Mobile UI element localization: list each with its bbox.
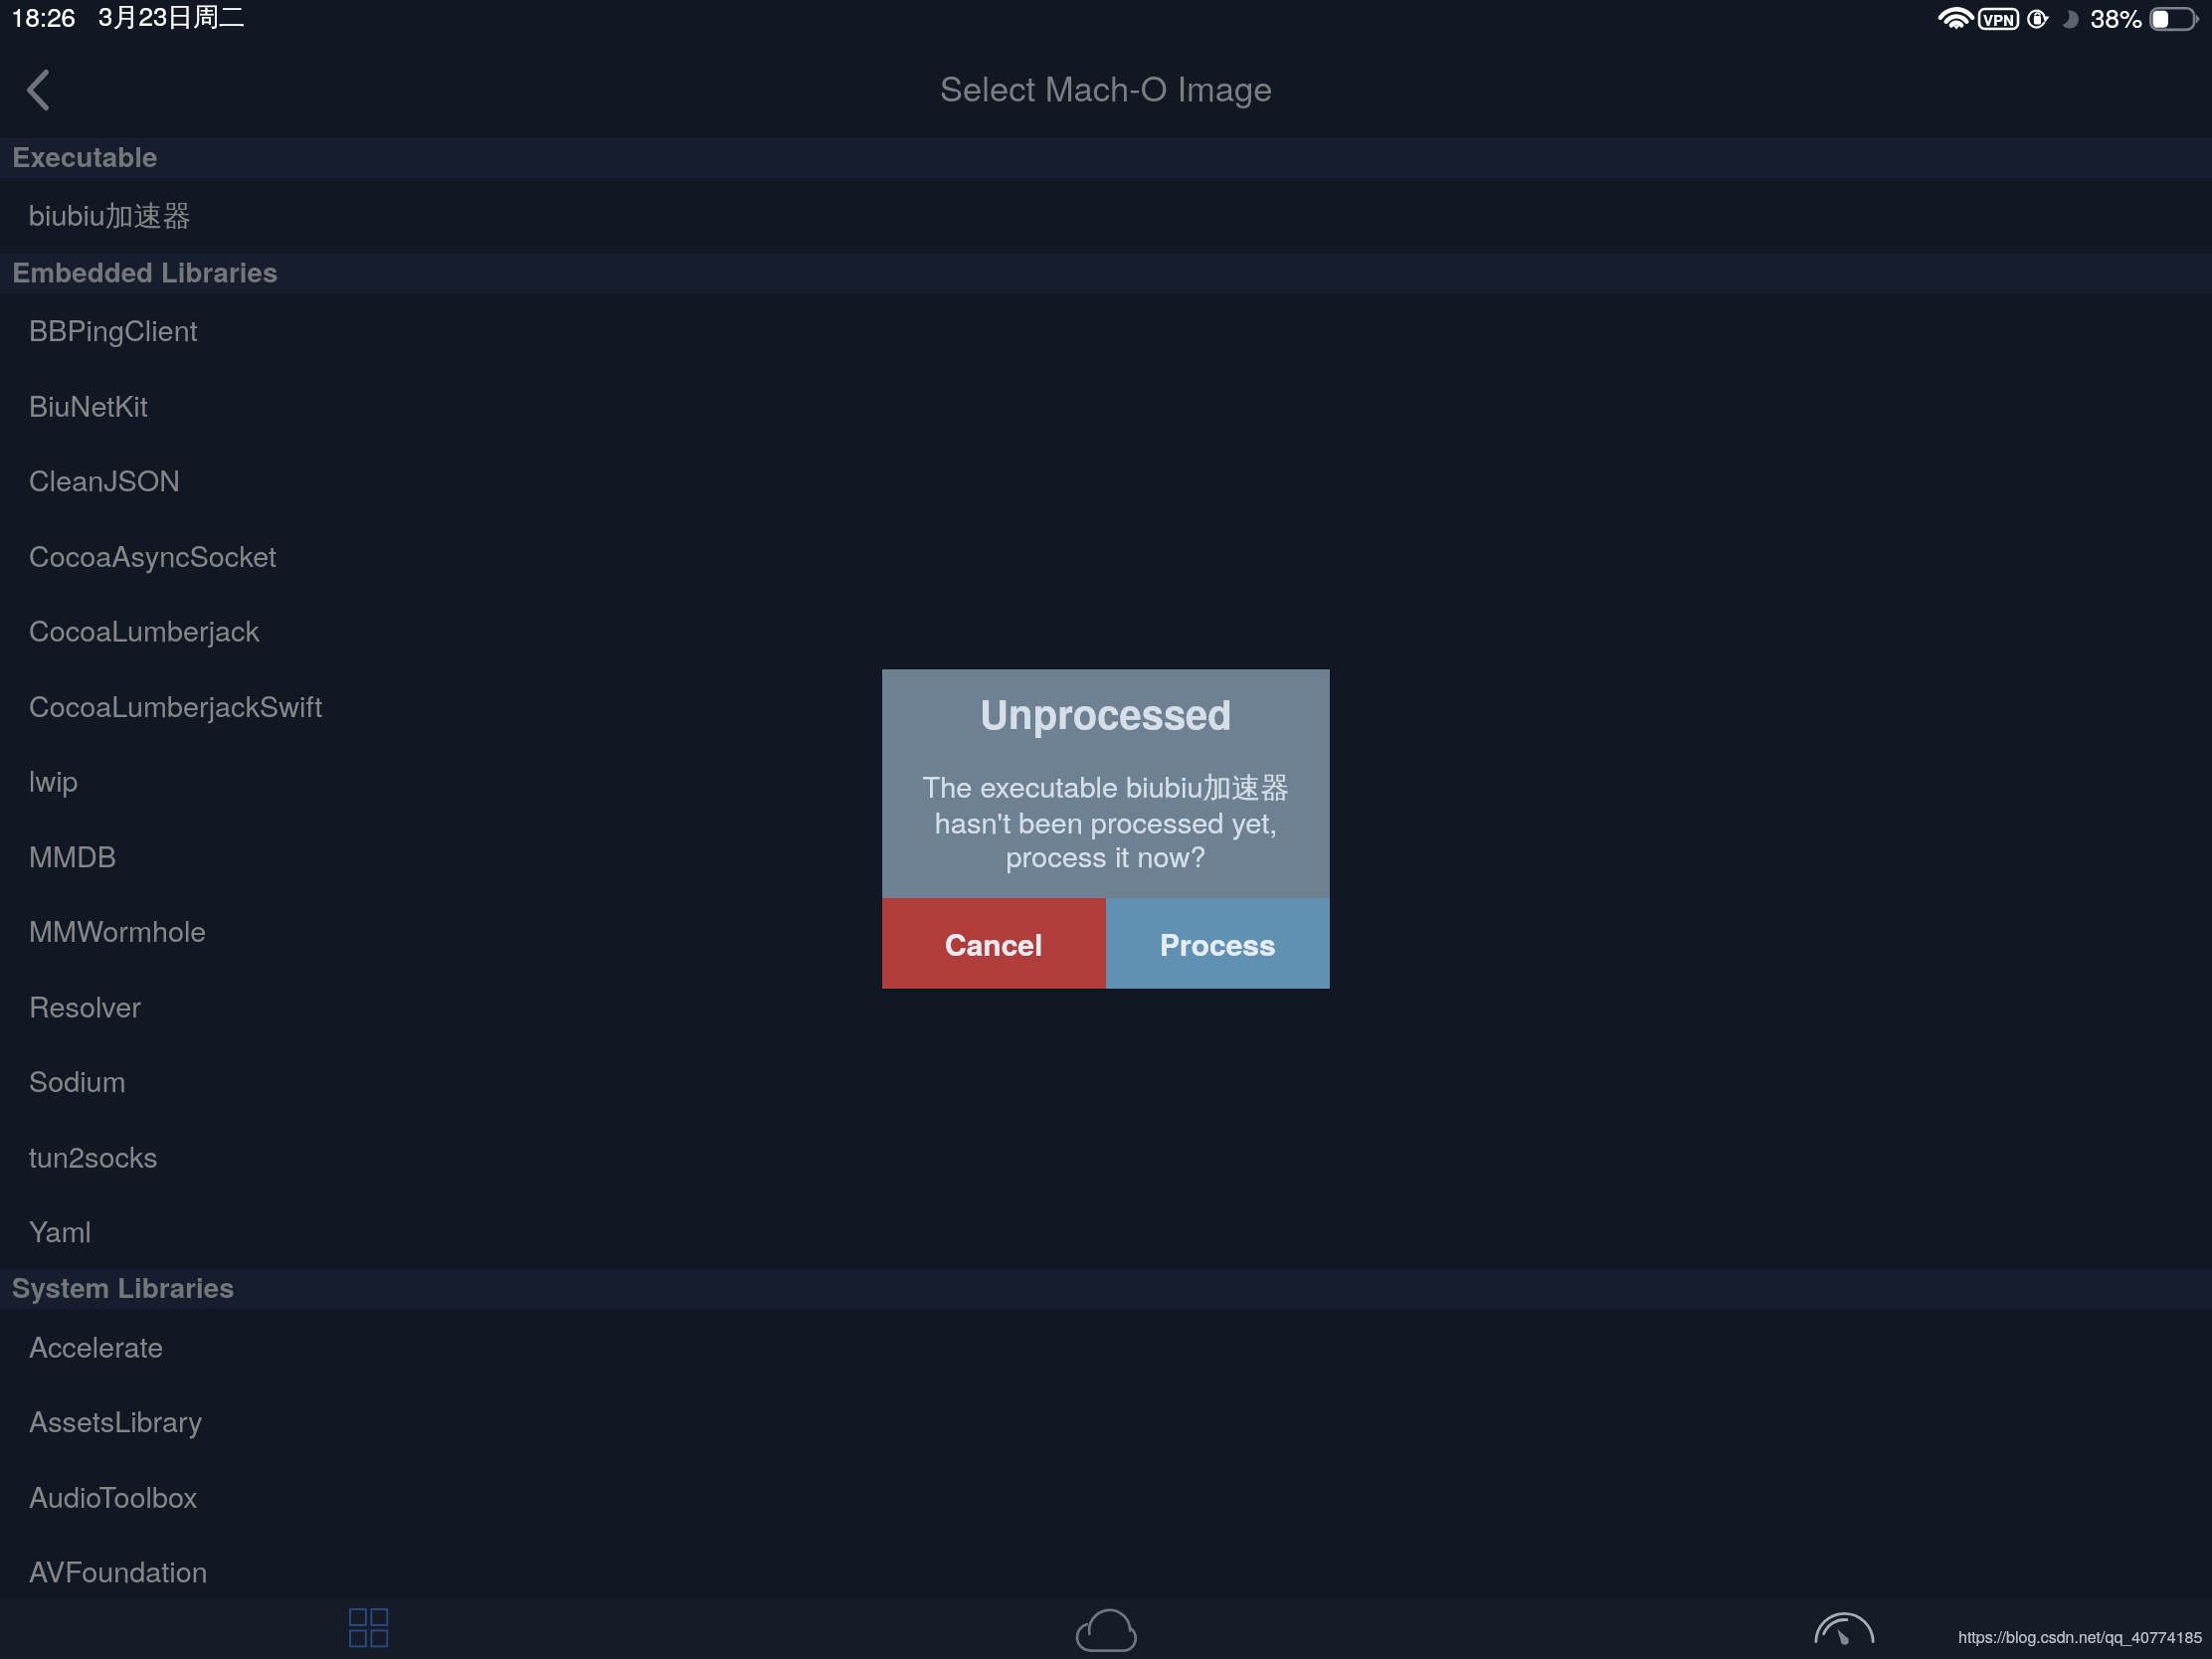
staticText: 38% [2091,0,2143,35]
button[interactable]: AVFoundation [0,1535,2212,1609]
button[interactable]: AssetsLibrary [0,1384,2212,1459]
staticText: BBPingClient [29,308,198,349]
button[interactable]: lwip [0,744,2212,819]
button[interactable]: Cancel [882,898,1106,989]
staticText: Sodium [29,1059,126,1100]
button[interactable]: Sodium [0,1044,2212,1119]
button[interactable]: tun2socks [0,1119,2212,1195]
button[interactable]: CocoaLumberjackSwift [0,668,2212,744]
button[interactable]: MMWormhole [0,894,2212,969]
button[interactable]: Process [1106,898,1330,989]
staticText: Executable [12,136,158,176]
staticText: CocoaLumberjackSwift [29,684,323,725]
button[interactable]: Cloud [1070,1599,1140,1659]
staticText: CocoaLumberjack [29,609,261,649]
button[interactable]: BBPingClient [0,293,2212,368]
button[interactable]: Apps [338,1599,398,1659]
staticText: MMDB [29,834,116,875]
staticText: CocoaAsyncSocket [29,534,276,575]
staticText: VPN [1983,9,2014,29]
staticText: 3月23日周二 [98,0,246,34]
button[interactable]: AudioToolbox [0,1459,2212,1535]
staticText: AudioToolbox [29,1475,198,1516]
staticText: AssetsLibrary [29,1399,203,1440]
button[interactable]: Yaml [0,1195,2212,1269]
staticText: Select Mach-O Image [940,62,1273,111]
staticText: Cancel [945,922,1043,965]
button[interactable]: Back [0,46,76,138]
staticText: tun2socks [29,1135,158,1176]
staticText: biubiu加速器 [29,193,192,235]
staticText: CleanJSON [29,459,181,499]
staticText: lwip [29,759,79,800]
staticText: Resolver [29,985,141,1025]
staticText: Unprocessed [980,684,1232,741]
staticText: System Libraries [12,1267,235,1307]
button[interactable]: biubiu加速器 [0,178,2212,254]
staticText: 18:26 [11,0,77,34]
staticText: MMWormhole [29,909,207,950]
staticText: Yaml [29,1209,92,1250]
button[interactable]: Accelerate [0,1309,2212,1384]
staticText: Accelerate [29,1325,164,1366]
staticText: AVFoundation [29,1550,208,1590]
button[interactable]: CleanJSON [0,444,2212,518]
staticText: BiuNetKit [29,384,148,425]
staticText: Embedded Libraries [12,252,278,291]
button[interactable]: Resolver [0,969,2212,1044]
staticText: The executable biubiu加速器 hasn't been pro… [882,765,1330,875]
button[interactable]: Speed test [1810,1599,1880,1649]
button[interactable]: CocoaAsyncSocket [0,518,2212,594]
staticText: https://blog.csdn.net/qq_40774185 [1958,1625,2203,1648]
button[interactable]: MMDB [0,819,2212,894]
button[interactable]: BiuNetKit [0,368,2212,444]
staticText: Process [1160,922,1276,965]
button[interactable]: CocoaLumberjack [0,594,2212,668]
